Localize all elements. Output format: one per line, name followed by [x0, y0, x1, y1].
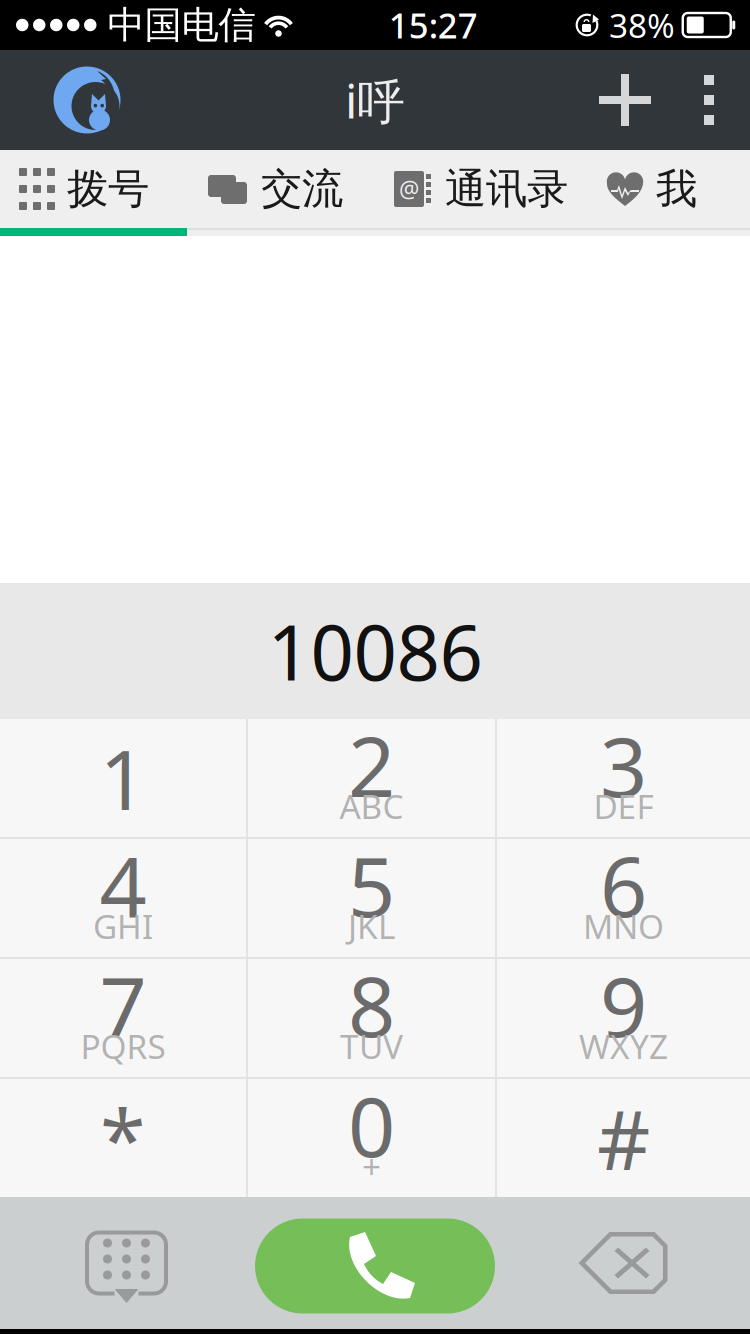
staticText: TUV	[340, 1024, 403, 1068]
staticText: @	[399, 174, 419, 204]
staticText: 4	[99, 830, 146, 940]
button[interactable]: 1	[0, 719, 246, 837]
staticText: 拨号	[67, 164, 149, 214]
button[interactable]: 交流	[187, 150, 375, 228]
button[interactable]: @	[375, 150, 581, 228]
button[interactable]: #	[497, 1079, 750, 1197]
staticText: 6	[600, 830, 647, 940]
staticText: 通讯录	[445, 164, 568, 214]
staticText: #	[597, 1083, 650, 1193]
staticText: *	[100, 1083, 146, 1193]
button[interactable]: 9	[497, 959, 750, 1077]
button[interactable]: *	[0, 1079, 246, 1197]
staticText: 10086	[267, 600, 482, 701]
staticText: 中国电信	[107, 2, 255, 48]
staticText: GHI	[93, 904, 153, 948]
button[interactable]: 拨号	[0, 150, 187, 228]
staticText: 9	[600, 950, 647, 1060]
button[interactable]: 3	[497, 719, 750, 837]
staticText: 3	[600, 710, 647, 820]
staticText: JKL	[348, 904, 395, 948]
staticText: 1	[99, 723, 146, 833]
staticText: 5	[348, 830, 395, 940]
staticText: MNO	[583, 904, 664, 948]
button[interactable]: Call	[253, 1197, 497, 1329]
staticText: i呼	[345, 68, 405, 132]
button[interactable]: Delete	[497, 1197, 750, 1329]
staticText: 38%	[609, 3, 675, 47]
staticText: +	[362, 1144, 381, 1188]
button[interactable]: 4	[0, 839, 246, 957]
staticText: DEF	[593, 784, 653, 828]
staticText: 8	[348, 950, 395, 1060]
staticText: WXYZ	[579, 1024, 668, 1068]
staticText: PQRS	[80, 1024, 165, 1068]
button[interactable]: Home	[0, 50, 120, 150]
staticText: 我	[656, 164, 697, 214]
button[interactable]: 5	[248, 839, 495, 957]
button[interactable]: 0	[248, 1079, 495, 1197]
staticText: 交流	[261, 164, 343, 214]
button[interactable]: Add	[582, 50, 668, 150]
staticText: 2	[348, 710, 395, 820]
button[interactable]: 我	[581, 150, 750, 228]
button[interactable]: More	[668, 50, 750, 150]
button[interactable]: 2	[248, 719, 495, 837]
staticText: ABC	[339, 784, 403, 828]
button[interactable]: 7	[0, 959, 246, 1077]
staticText: 0	[348, 1070, 395, 1180]
button[interactable]: 8	[248, 959, 495, 1077]
button[interactable]: Hide keypad	[0, 1197, 253, 1329]
staticText: 15:27	[389, 2, 478, 48]
button[interactable]: 6	[497, 839, 750, 957]
staticText: 7	[99, 950, 146, 1060]
